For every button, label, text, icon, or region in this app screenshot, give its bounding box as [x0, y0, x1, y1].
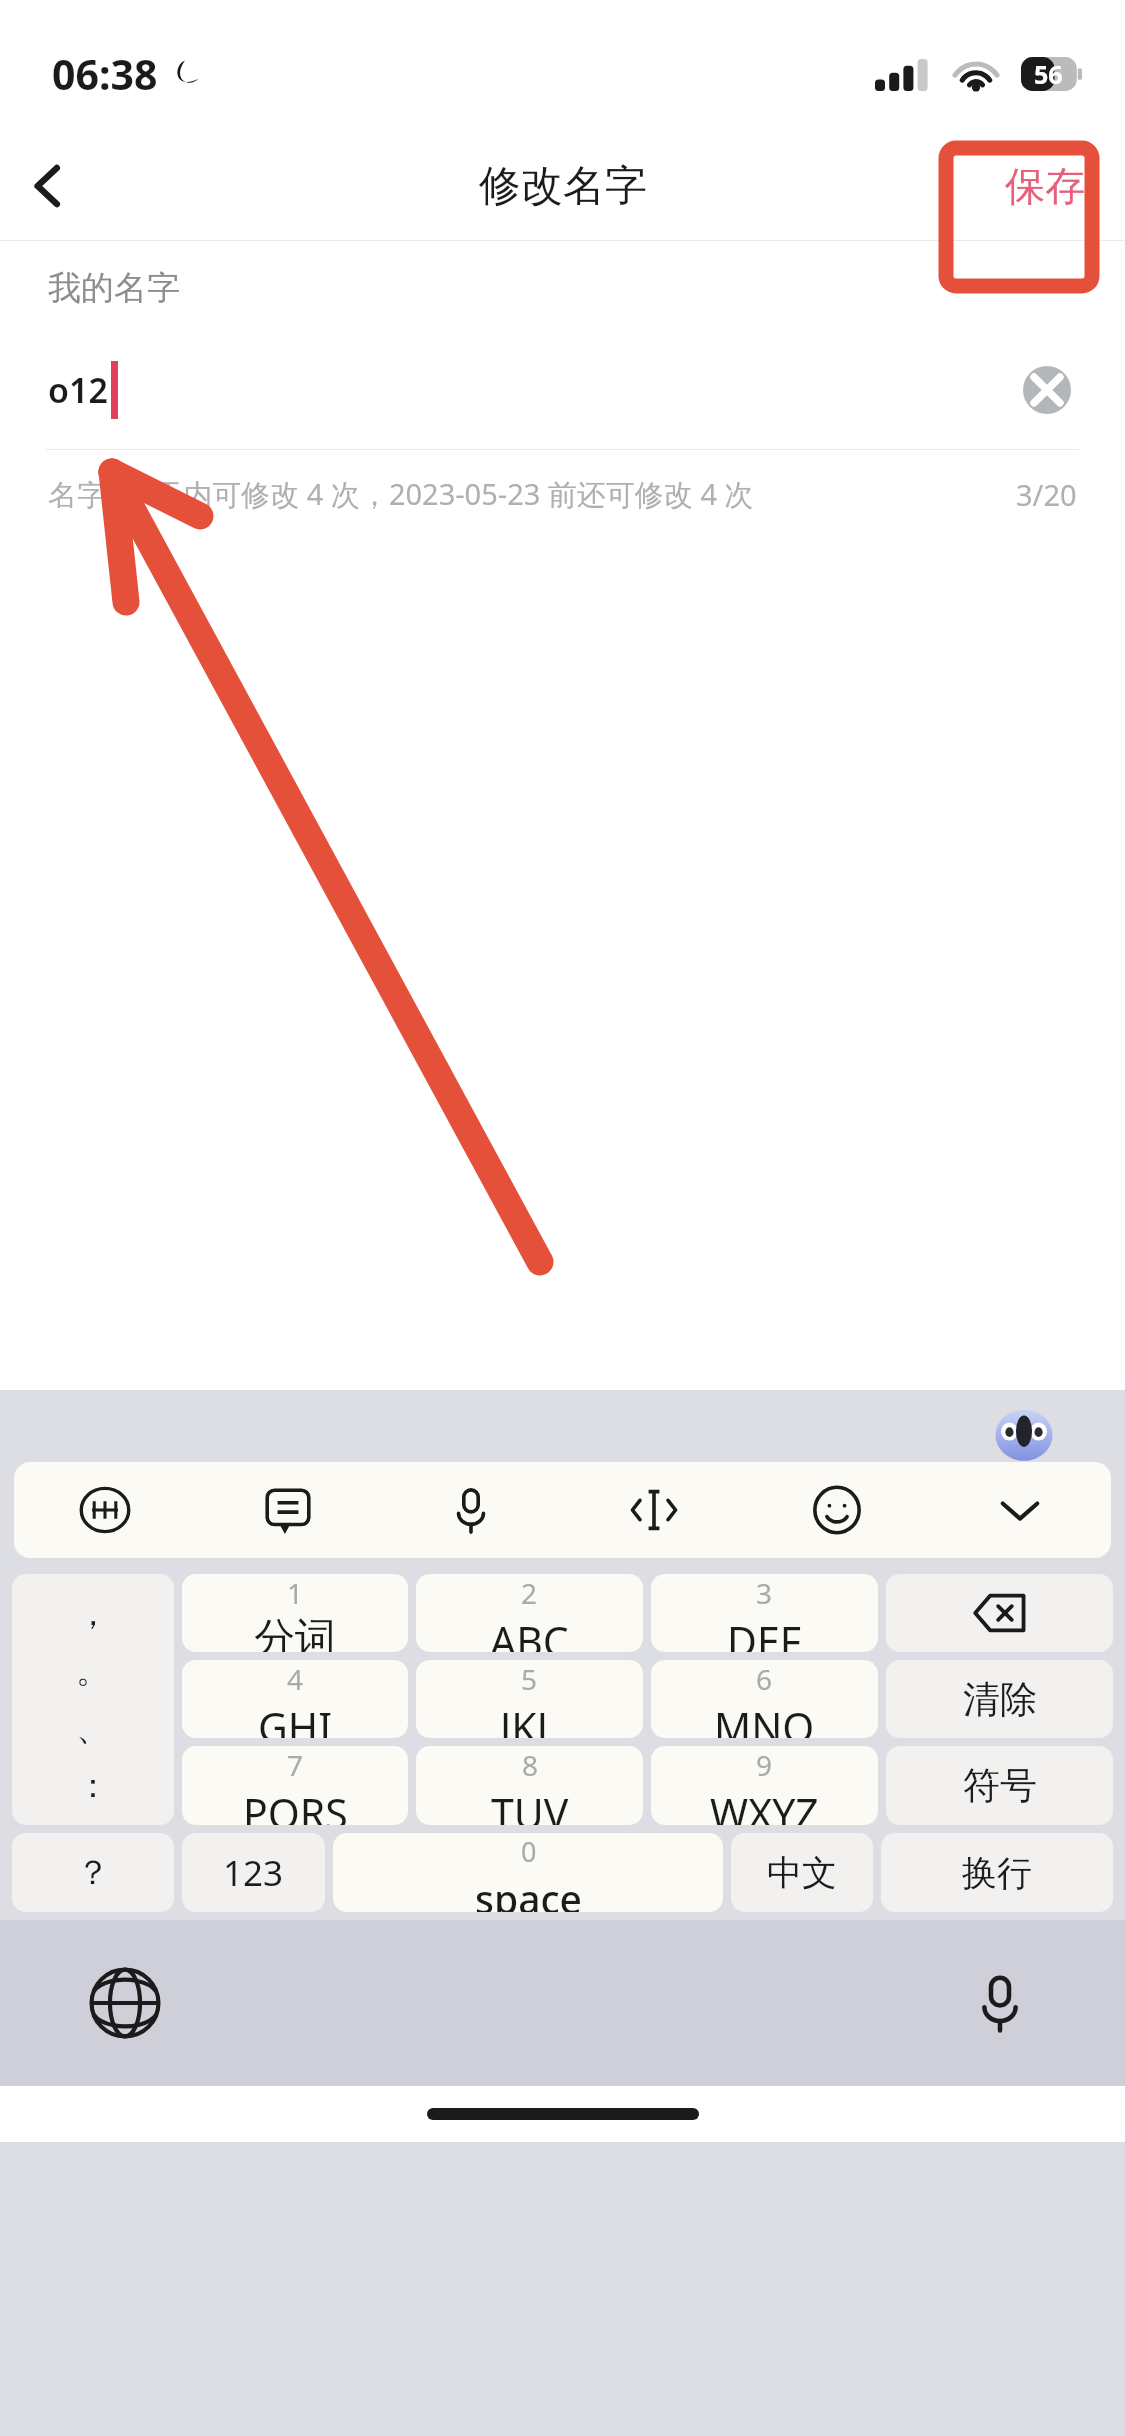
button[interactable]: Back	[0, 138, 96, 234]
staticText: 1	[287, 1574, 304, 1612]
button[interactable]: Hide keyboard	[928, 1462, 1111, 1558]
staticText: ，	[76, 1592, 110, 1635]
button[interactable]: Emoji	[745, 1462, 928, 1558]
staticText: ABC	[490, 1613, 569, 1652]
staticText: 分词	[254, 1613, 336, 1652]
button[interactable]: Input method	[14, 1462, 196, 1558]
staticText: 中文	[767, 1851, 837, 1895]
staticText: 名字 30 天内可修改 4 次，2023-05-23 前还可修改 4 次	[48, 474, 754, 514]
button[interactable]: 4	[182, 1660, 408, 1738]
staticText: 2	[521, 1574, 538, 1612]
button[interactable]: 1	[182, 1574, 408, 1652]
staticText: 7	[287, 1746, 304, 1784]
button[interactable]: 0	[333, 1833, 723, 1912]
button[interactable]: Quick phrases	[196, 1462, 379, 1558]
button[interactable]: Clear text	[1017, 360, 1077, 420]
staticText: 5	[521, 1660, 538, 1698]
staticText: 06:38	[52, 46, 158, 102]
staticText: 3/20	[1016, 475, 1077, 514]
staticText: 4	[287, 1660, 304, 1698]
staticText: 56	[1034, 57, 1063, 91]
button[interactable]: 5	[416, 1660, 643, 1738]
staticText: 保存	[1005, 161, 1085, 211]
staticText: MNO	[714, 1699, 815, 1738]
button[interactable]: 7	[182, 1746, 408, 1825]
staticText: DEF	[727, 1613, 802, 1652]
staticText: 0	[521, 1833, 537, 1870]
staticText: 8	[522, 1746, 539, 1784]
button[interactable]: Dictation	[957, 1960, 1043, 2046]
button[interactable]: Move cursor	[562, 1462, 745, 1558]
button[interactable]: 123	[182, 1833, 325, 1912]
button[interactable]: 中文	[731, 1833, 873, 1912]
staticText: 换行	[962, 1851, 1032, 1895]
staticText: WXYZ	[710, 1785, 819, 1825]
staticText: 123	[223, 1849, 284, 1897]
button[interactable]: 3	[651, 1574, 878, 1652]
staticText: 清除	[963, 1676, 1037, 1723]
button[interactable]: Backspace	[886, 1574, 1113, 1652]
button[interactable]: Voice input	[379, 1462, 562, 1558]
staticText: ：	[76, 1764, 110, 1807]
button[interactable]: o12	[48, 361, 118, 419]
button[interactable]: ，	[12, 1574, 174, 1825]
button[interactable]: 9	[651, 1746, 878, 1825]
button[interactable]: 8	[416, 1746, 643, 1825]
button[interactable]: 保存	[979, 147, 1111, 225]
button[interactable]: Change keyboard language	[82, 1960, 168, 2046]
staticText: 、	[76, 1707, 110, 1750]
button[interactable]: ？	[12, 1833, 174, 1912]
staticText: o12	[48, 367, 108, 413]
staticText: 修改名字	[479, 160, 647, 213]
staticText: TUV	[491, 1785, 569, 1825]
button[interactable]: 符号	[886, 1746, 1113, 1825]
button[interactable]: 2	[416, 1574, 643, 1652]
staticText: space	[475, 1872, 582, 1912]
staticText: 我的名字	[48, 267, 180, 309]
staticText: GHI	[258, 1699, 333, 1738]
staticText: 符号	[963, 1762, 1037, 1809]
staticText: 6	[756, 1660, 773, 1698]
staticText: ？	[76, 1851, 110, 1894]
staticText: 。	[76, 1649, 110, 1692]
button[interactable]: 清除	[886, 1660, 1113, 1738]
button[interactable]: 换行	[881, 1833, 1113, 1912]
staticText: PQRS	[243, 1785, 348, 1825]
button[interactable]: 6	[651, 1660, 878, 1738]
staticText: 9	[756, 1746, 773, 1784]
staticText: 3	[756, 1574, 773, 1612]
staticText: JKL	[500, 1699, 559, 1738]
